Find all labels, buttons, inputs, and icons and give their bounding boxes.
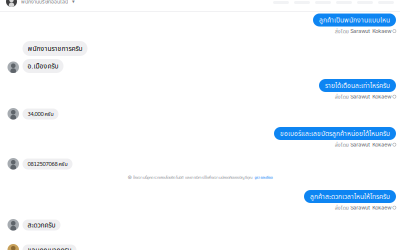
button[interactable]: ลูกค้าสะดวกเวลาไหนให้โทรครับ bbox=[304, 190, 396, 211]
staticText: ขอบคุณมากครับ bbox=[27, 245, 71, 250]
button[interactable]: พนักงานบริษัทออนไลน์ bbox=[0, 0, 400, 7]
staticText: ⊛ bbox=[127, 174, 131, 180]
staticText: ลูกค้าสะดวกเวลาไหนให้โทรครับ bbox=[310, 192, 390, 201]
button[interactable]: ขอเบอร์และเลขบัตรลูกค้าหน่อยได้ไหมครับ bbox=[274, 127, 396, 148]
staticText: พนักงานราชการครับ bbox=[27, 44, 82, 53]
staticText: ดูรายละเอียด bbox=[254, 174, 272, 180]
staticText: ส่งโดย bbox=[335, 93, 349, 100]
staticText: Sarawut Kokaew bbox=[350, 204, 391, 211]
button[interactable]: ลูกค้าเป็นพนักงานแบบไหน bbox=[313, 13, 396, 35]
staticText: ส่งโดย bbox=[335, 141, 349, 148]
button[interactable]: ดูรายละเอียด bbox=[254, 174, 272, 180]
button[interactable]: สะดวกครับ bbox=[22, 219, 60, 230]
staticText: ข้อความนี้ถูกตรวจสอบโดยอัตโนมัติ และอาจม… bbox=[133, 174, 253, 180]
staticText: ส่งโดย bbox=[335, 204, 349, 211]
staticText: สะดวกครับ bbox=[27, 220, 55, 230]
staticText: Sarawut Kokaew bbox=[350, 93, 391, 100]
staticText: ขอเบอร์และเลขบัตรลูกค้าหน่อยได้ไหมครับ bbox=[280, 129, 390, 138]
button[interactable]: รายได้เดือนละเท่าไหร่ครับ bbox=[319, 79, 396, 100]
button[interactable]: 34,000 ครับ bbox=[22, 108, 58, 119]
button[interactable]: ขอบคุณมากครับ bbox=[22, 244, 76, 250]
button[interactable]: อ.เมืองครับ bbox=[22, 59, 63, 73]
staticText: 34,000 ครับ bbox=[27, 110, 53, 118]
staticText: Sarawut Kokaew bbox=[350, 141, 391, 148]
staticText: รายได้เดือนละเท่าไหร่ครับ bbox=[325, 81, 390, 90]
staticText: ส่งโดย bbox=[335, 27, 349, 35]
button[interactable]: พนักงานราชการครับ bbox=[22, 41, 87, 56]
staticText: Sarawut Kokaew bbox=[350, 28, 391, 34]
button[interactable]: 0812507068 ครับ bbox=[22, 158, 72, 169]
staticText: ▾ bbox=[72, 0, 75, 5]
staticText: พนักงานบริษัทออนไลน์ bbox=[21, 0, 68, 5]
staticText: อ.เมืองครับ bbox=[27, 61, 58, 71]
staticText: 0812507068 ครับ bbox=[27, 160, 67, 168]
staticText: ลูกค้าเป็นพนักงานแบบไหน bbox=[319, 15, 390, 25]
